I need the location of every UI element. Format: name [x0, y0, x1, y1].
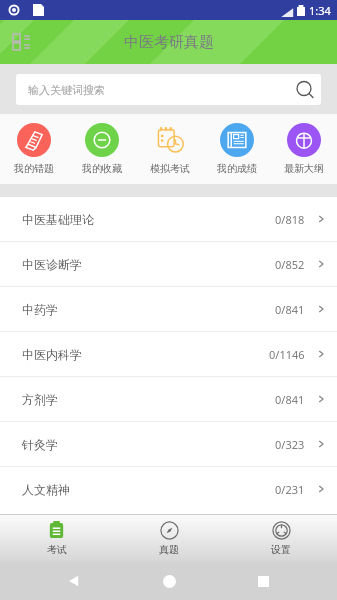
staticText: 0/1146: [269, 347, 305, 362]
button[interactable]: 人文精神: [0, 467, 337, 511]
staticText: 0/231: [275, 482, 305, 497]
staticText: 0/841: [275, 302, 305, 317]
staticText: 输入关键词搜索: [28, 83, 297, 97]
staticText: 0/841: [275, 392, 305, 407]
staticText: 1:34: [309, 3, 331, 18]
staticText: 0/852: [275, 257, 305, 272]
button[interactable]: 输入关键词搜索: [16, 74, 321, 105]
staticText: 真题: [159, 543, 179, 556]
staticText: 中医考研真题: [124, 33, 214, 52]
button[interactable]: 我的错题: [0, 114, 68, 184]
staticText: 方剂学: [22, 392, 275, 407]
button[interactable]: Back: [54, 562, 94, 600]
staticText: 考试: [47, 543, 67, 556]
button[interactable]: 方剂学: [0, 377, 337, 421]
button[interactable]: 中药学: [0, 287, 337, 331]
button[interactable]: Menu: [8, 29, 34, 55]
staticText: 中医基础理论: [22, 212, 275, 227]
button[interactable]: 中医诊断学: [0, 242, 337, 286]
staticText: 针灸学: [22, 437, 275, 452]
staticText: 模拟考试: [150, 162, 190, 175]
staticText: 我的收藏: [82, 162, 122, 175]
button[interactable]: 考试: [0, 514, 113, 562]
staticText: 最新大纲: [284, 162, 324, 175]
button[interactable]: 中医内科学: [0, 332, 337, 376]
button[interactable]: 我的成绩: [203, 114, 270, 184]
button[interactable]: 设置: [225, 514, 337, 562]
button[interactable]: 最新大纲: [270, 114, 337, 184]
button[interactable]: 针灸学: [0, 422, 337, 466]
staticText: 我的成绩: [217, 162, 257, 175]
button[interactable]: 中医基础理论: [0, 197, 337, 241]
staticText: 我的错题: [14, 162, 54, 175]
button[interactable]: 模拟考试: [136, 114, 203, 184]
staticText: 中医诊断学: [22, 257, 275, 272]
button[interactable]: Recents: [243, 562, 283, 600]
button[interactable]: 我的收藏: [68, 114, 136, 184]
staticText: 人文精神: [22, 482, 275, 497]
staticText: 0/323: [275, 437, 305, 452]
button[interactable]: Home: [149, 562, 189, 600]
staticText: 0/818: [275, 212, 305, 227]
button[interactable]: 真题: [113, 514, 225, 562]
staticText: 设置: [271, 543, 291, 556]
staticText: 中药学: [22, 302, 275, 317]
staticText: 中医内科学: [22, 347, 269, 362]
